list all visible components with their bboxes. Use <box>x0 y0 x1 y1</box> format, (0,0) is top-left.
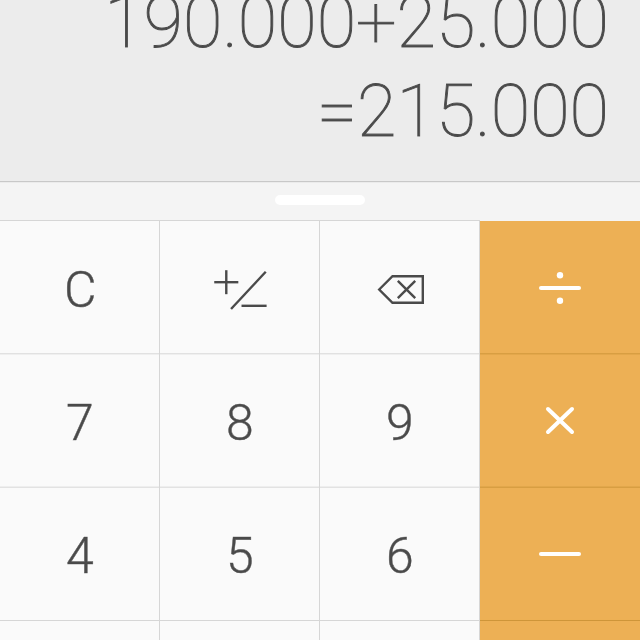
other: Divide <box>539 272 581 304</box>
staticText: 4 <box>66 527 94 586</box>
staticText: 7 <box>66 394 94 453</box>
button[interactable]: 5 <box>160 487 320 620</box>
staticText: 190.000+25.000 <box>0 0 609 64</box>
button[interactable]: C <box>0 221 160 354</box>
button[interactable]: Plus <box>480 620 640 640</box>
other: Minus <box>539 550 581 558</box>
staticText: 5 <box>226 527 254 586</box>
staticText: 5 <box>226 527 254 586</box>
staticText: 6 <box>386 527 414 586</box>
staticText: 4 <box>66 527 94 586</box>
button[interactable]: 7 <box>0 354 160 487</box>
button[interactable]: 3 <box>320 620 480 640</box>
staticText: C <box>64 261 97 320</box>
staticText: 8 <box>226 394 254 453</box>
button[interactable]: Minus <box>480 487 640 620</box>
button[interactable]: Multiply <box>480 354 640 487</box>
button[interactable]: 1 <box>0 620 160 640</box>
staticText: =215.000 <box>0 69 609 153</box>
other: Plus minus <box>212 269 268 309</box>
button[interactable]: 4 <box>0 487 160 620</box>
button[interactable]: Backspace <box>320 221 480 354</box>
button[interactable]: 8 <box>160 354 320 487</box>
button[interactable]: 2 <box>160 620 320 640</box>
other: Backspace <box>378 275 424 304</box>
staticText: =215.000 <box>0 69 609 153</box>
staticText: 9 <box>386 394 414 453</box>
button[interactable]: Divide <box>480 221 640 354</box>
staticText: C <box>64 261 97 320</box>
other: Multiply <box>546 407 574 434</box>
button[interactable]: 6 <box>320 487 480 620</box>
button[interactable]: 9 <box>320 354 480 487</box>
staticText: 8 <box>226 394 254 453</box>
staticText: 7 <box>66 394 94 453</box>
staticText: 190.000+25.000 <box>0 0 609 64</box>
staticText: 6 <box>386 527 414 586</box>
button[interactable]: Plus minus <box>160 221 320 354</box>
staticText: 9 <box>386 394 414 453</box>
